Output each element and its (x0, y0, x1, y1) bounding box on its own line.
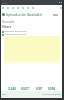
button[interactable]: DONE (48, 87, 56, 90)
button[interactable]: Selected filter value (2, 33, 64, 36)
staticText: SORT (36, 87, 43, 90)
button[interactable]: UploadLocale (Available) (0, 11, 64, 18)
button[interactable]: Toolbar action (16, 6, 20, 10)
staticText: Account ID: 00001 (42, 93, 62, 96)
button[interactable]: SELECT (21, 87, 30, 90)
staticText: CLEAR (8, 87, 16, 90)
button[interactable]: CLEAR (8, 87, 16, 90)
staticText: 9:30 (2, 1, 7, 4)
staticText: Sent (2, 93, 7, 96)
button[interactable]: Overflow menu (59, 6, 63, 10)
staticText: UploadLocale (Available) (6, 13, 43, 17)
staticText: Filters (2, 25, 12, 29)
staticText: Selected filter value (5, 30, 27, 33)
button[interactable]: Toolbar action (26, 6, 30, 10)
button[interactable]: Selected filter value (2, 30, 64, 33)
button[interactable]: Toolbar action (31, 6, 35, 10)
staticText: Selected filter value (5, 33, 27, 36)
button[interactable]: Toolbar action (6, 6, 10, 10)
staticText: No results (2, 20, 15, 24)
staticText: DONE (48, 87, 56, 90)
button[interactable]: Toolbar action (1, 6, 5, 10)
button[interactable]: Toolbar action (21, 6, 25, 10)
button[interactable]: SORT (36, 87, 43, 90)
button[interactable]: Toolbar action (11, 6, 15, 10)
staticText: SELECT (21, 87, 30, 90)
